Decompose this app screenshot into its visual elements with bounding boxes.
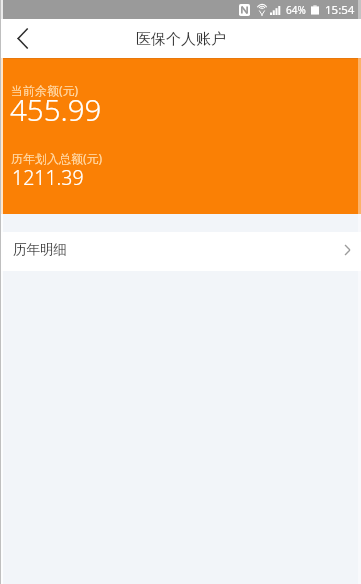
staticText: 历年划入总额(元) [11,150,103,166]
button[interactable]: Back [0,19,46,58]
button[interactable]: 历年明细 [0,232,361,271]
staticText: 当前余额(元) [11,82,79,98]
staticText: 医保个人账户 [136,30,226,49]
staticText: 15:54 [325,2,355,18]
staticText: 455.99 [10,89,102,129]
staticText: 历年明细 [13,241,67,258]
staticText: 1211.39 [12,164,84,191]
staticText: 64% [286,3,306,17]
